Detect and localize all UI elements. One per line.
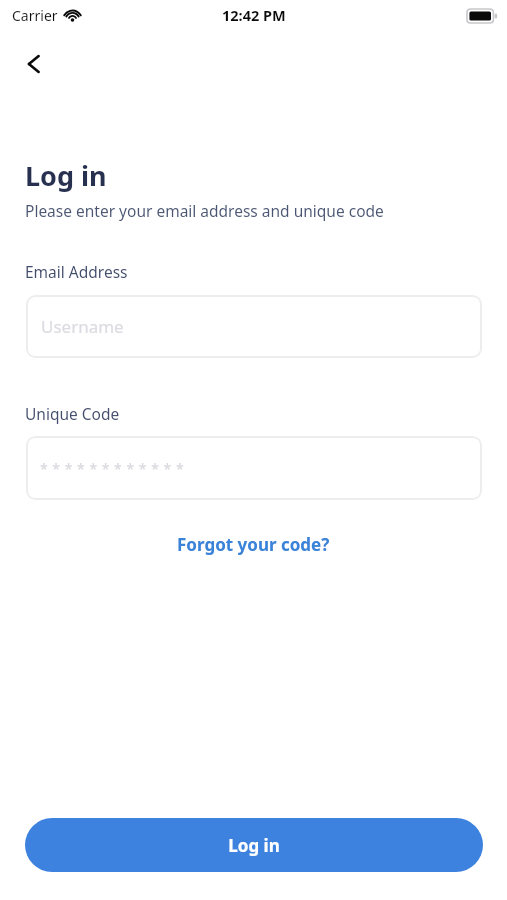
- staticText: Please enter your email address and uniq…: [25, 200, 384, 221]
- staticText: Email Address: [25, 261, 128, 282]
- staticText: Log in: [228, 834, 280, 857]
- button[interactable]: Log in: [25, 818, 483, 872]
- staticText: Log in: [25, 157, 107, 194]
- staticText: Forgot your code?: [177, 533, 330, 556]
- staticText: 12:42 PM: [222, 5, 286, 25]
- button[interactable]: * * * * * * * * * * * *: [26, 436, 482, 500]
- button[interactable]: Forgot your code?: [165, 528, 342, 561]
- button[interactable]: Username: [26, 295, 482, 358]
- staticText: * * * * * * * * * * * *: [40, 459, 185, 478]
- button[interactable]: Back: [14, 42, 58, 86]
- staticText: Unique Code: [25, 403, 120, 424]
- staticText: Carrier: [12, 6, 58, 25]
- staticText: Username: [41, 315, 124, 338]
